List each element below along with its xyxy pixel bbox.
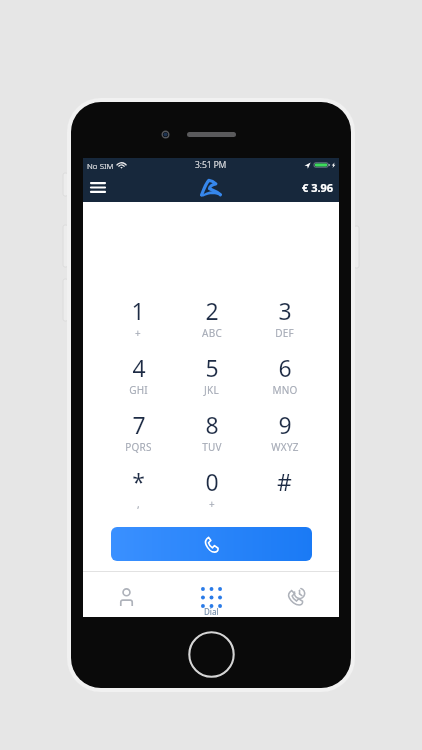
staticText: 3: [278, 295, 292, 326]
button[interactable]: Call: [111, 527, 312, 561]
staticText: ,: [137, 497, 140, 511]
staticText: 0: [205, 466, 219, 497]
staticText: 2: [205, 295, 219, 326]
staticText: 8: [205, 409, 219, 440]
staticText: Dial: [204, 606, 219, 617]
button[interactable]: 7: [101, 409, 175, 466]
staticText: 7: [132, 409, 146, 440]
staticText: 6: [278, 352, 292, 383]
button[interactable]: 6: [248, 352, 321, 409]
button[interactable]: Recents: [254, 572, 339, 617]
staticText: 3:51 PM: [195, 159, 227, 171]
staticText: PQRS: [125, 440, 152, 454]
staticText: ABC: [202, 326, 222, 340]
staticText: No SIM: [87, 160, 114, 171]
staticText: JKL: [204, 383, 219, 397]
button[interactable]: 1: [101, 295, 175, 352]
staticText: DEF: [275, 326, 294, 340]
staticText: WXYZ: [271, 440, 299, 454]
button[interactable]: 0: [175, 466, 248, 523]
button[interactable]: Contacts: [83, 572, 169, 617]
staticText: *: [132, 466, 145, 497]
staticText: € 3.96: [302, 180, 334, 195]
button[interactable]: 5: [175, 352, 248, 409]
button[interactable]: 8: [175, 409, 248, 466]
staticText: 4: [132, 352, 146, 383]
button[interactable]: 2: [175, 295, 248, 352]
button[interactable]: #: [248, 466, 321, 523]
staticText: +: [135, 326, 141, 340]
button[interactable]: 3: [248, 295, 321, 352]
staticText: 9: [278, 409, 292, 440]
button[interactable]: 4: [101, 352, 175, 409]
staticText: +: [209, 497, 215, 511]
staticText: 1: [131, 295, 145, 326]
button[interactable]: Home: [188, 631, 235, 678]
staticText: #: [277, 466, 292, 497]
button[interactable]: 9: [248, 409, 321, 466]
staticText: TUV: [202, 440, 222, 454]
button[interactable]: *: [101, 466, 175, 523]
button[interactable]: Dial: [169, 572, 254, 617]
staticText: 5: [205, 352, 219, 383]
staticText: GHI: [129, 383, 148, 397]
button[interactable]: Menu: [88, 177, 108, 197]
button[interactable]: € 3.96: [302, 180, 334, 195]
staticText: MNO: [272, 383, 298, 397]
